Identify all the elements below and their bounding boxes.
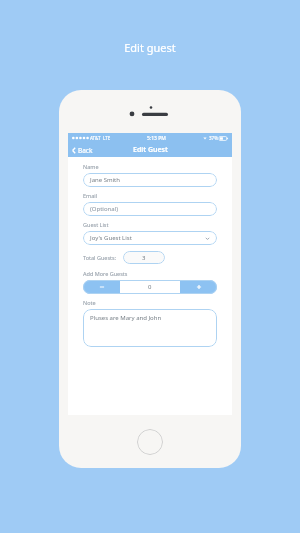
staticText: (Optional) (90, 205, 210, 213)
staticText: 0 (148, 283, 152, 291)
staticText: Joy's Guest List (90, 234, 205, 242)
staticText: Guest List (83, 221, 109, 228)
staticText: Back (78, 146, 93, 155)
staticText: 37% (209, 135, 218, 141)
staticText: Add More Guests (83, 270, 128, 277)
button[interactable]: Back (68, 144, 97, 157)
button[interactable]: Decrease guests (83, 280, 120, 294)
button[interactable]: Joy's Guest List (83, 231, 217, 245)
staticText: Jane Smith (90, 176, 210, 184)
staticText: Note (83, 299, 96, 306)
button[interactable]: Jane Smith (83, 173, 217, 187)
staticText: Edit guest (124, 40, 176, 55)
staticText: 5:13 PM (147, 135, 166, 142)
staticText: Pluses are Mary and John (90, 314, 162, 322)
staticText: Email (83, 192, 98, 199)
button[interactable]: (Optional) (83, 202, 217, 216)
staticText: Total Guests: (83, 254, 117, 261)
staticText: Name (83, 163, 99, 170)
staticText: 3 (142, 254, 146, 262)
staticText: LTE (103, 135, 111, 141)
button[interactable]: Pluses are Mary and John (83, 309, 217, 347)
button[interactable]: Increase guests (180, 280, 217, 294)
staticText: Edit Guest (133, 145, 168, 155)
staticText: AT&T (90, 135, 101, 141)
button[interactable]: Home (137, 429, 163, 455)
